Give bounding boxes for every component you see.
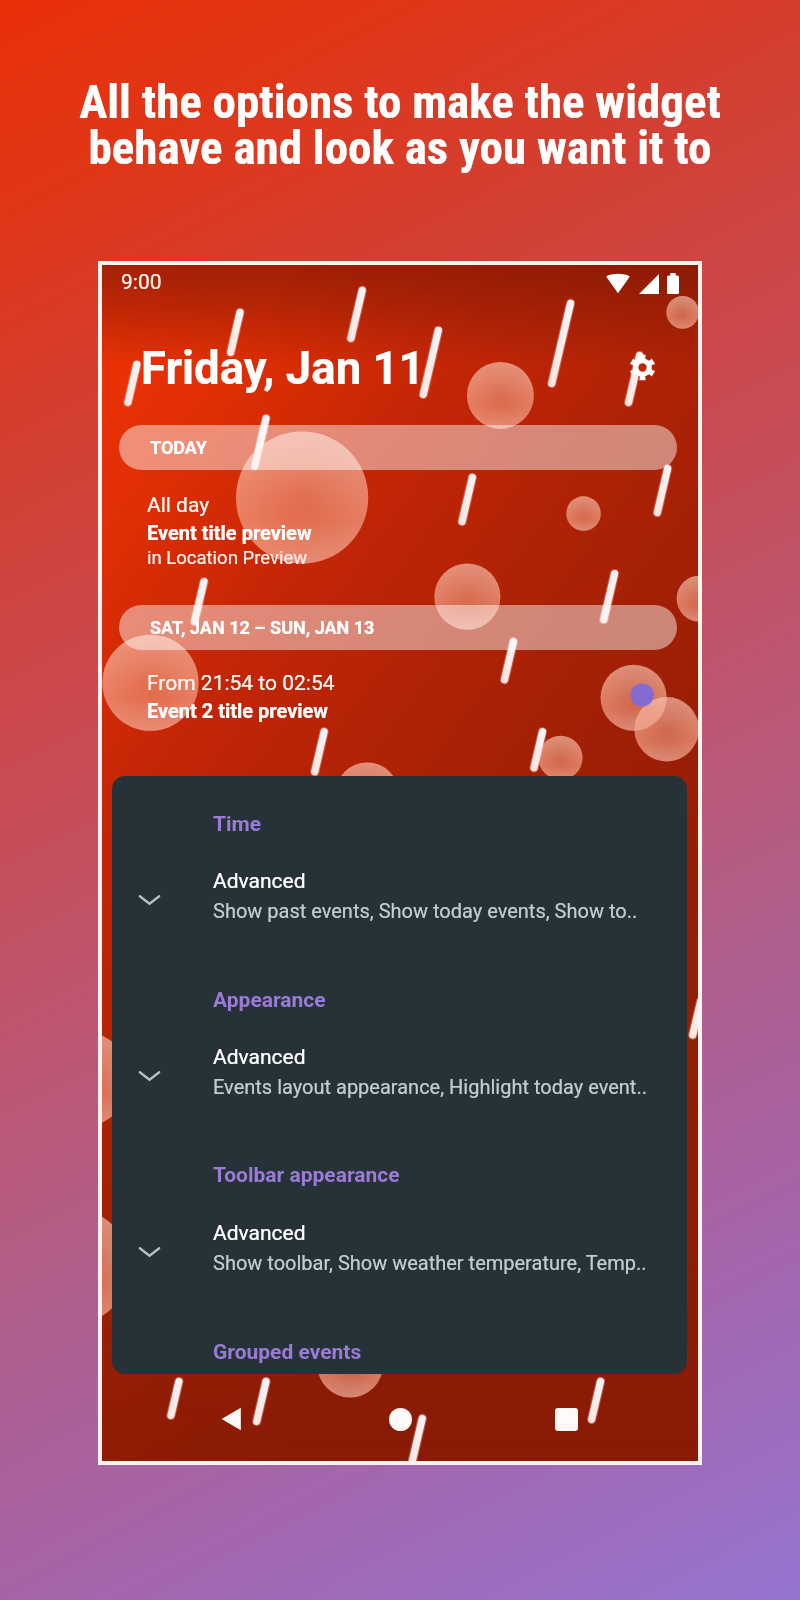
button[interactable]: Advanced: [112, 856, 687, 948]
staticText: SAT, JAN 12 – SUN, JAN 13: [150, 617, 375, 638]
staticText: Event title preview: [147, 521, 312, 544]
button[interactable]: Widget settings: [620, 345, 664, 389]
staticText: Appearance: [213, 988, 326, 1013]
staticText: All the options to make the widget behav…: [79, 74, 721, 176]
staticText: All day: [147, 493, 210, 518]
staticText: Show past events, Show today events, Sho…: [213, 899, 638, 922]
staticText: Event 2 title preview: [147, 699, 329, 722]
staticText: From 21:54 to 02:54: [147, 671, 335, 696]
staticText: in Location Preview: [147, 547, 308, 569]
other: Battery: [667, 273, 679, 294]
other: Wi-Fi: [606, 274, 630, 294]
button[interactable]: Recent apps: [536, 1389, 596, 1449]
button[interactable]: Home: [370, 1389, 430, 1449]
other: Mobile signal: [639, 274, 659, 294]
staticText: TODAY: [150, 437, 207, 458]
button[interactable]: Advanced: [112, 1208, 687, 1300]
button[interactable]: SAT, JAN 12 – SUN, JAN 13: [119, 605, 677, 650]
button[interactable]: Back: [202, 1389, 262, 1449]
button[interactable]: TODAY: [119, 425, 677, 470]
staticText: Advanced: [213, 1221, 306, 1246]
staticText: Show toolbar, Show weather temperature, …: [213, 1251, 647, 1274]
staticText: Events layout appearance, Highlight toda…: [213, 1075, 647, 1098]
staticText: Toolbar appearance: [213, 1163, 400, 1188]
staticText: 9:00: [121, 270, 162, 295]
button[interactable]: Advanced: [112, 1032, 687, 1124]
staticText: Grouped events: [213, 1340, 362, 1365]
staticText: Friday, Jan 11: [141, 342, 425, 395]
staticText: Advanced: [213, 869, 306, 894]
staticText: Time: [213, 812, 262, 837]
staticText: Advanced: [213, 1045, 306, 1070]
